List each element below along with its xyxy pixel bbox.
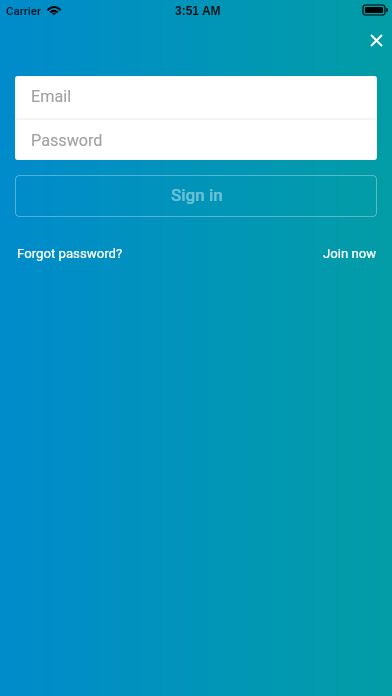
staticText: 3:51 AM: [175, 4, 221, 17]
staticText: Password: [31, 131, 103, 150]
staticText: Sign in: [171, 185, 223, 205]
button[interactable]: Close: [356, 20, 392, 60]
button[interactable]: Sign in: [15, 175, 377, 217]
staticText: Join now: [323, 246, 377, 261]
staticText: Forgot password?: [17, 246, 123, 261]
staticText: Email: [31, 87, 72, 106]
button[interactable]: Password: [15, 120, 377, 160]
button[interactable]: Forgot password?: [17, 246, 123, 261]
button[interactable]: Email: [15, 76, 377, 118]
button[interactable]: Join now: [323, 246, 377, 261]
staticText: Carrier: [6, 4, 41, 17]
